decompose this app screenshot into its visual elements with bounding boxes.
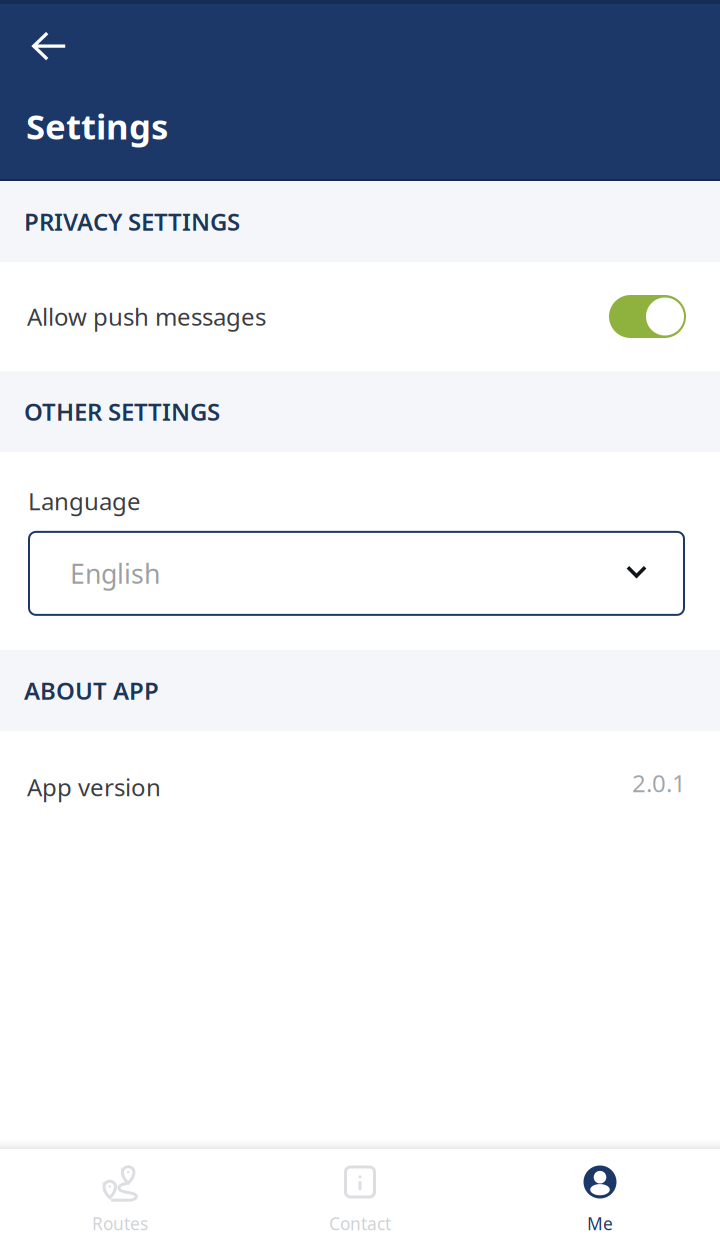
button[interactable]: Back bbox=[0, 0, 80, 67]
button[interactable]: Allow push messages bbox=[0, 262, 720, 371]
staticText: Routes bbox=[92, 1212, 148, 1235]
staticText: English bbox=[70, 556, 160, 591]
staticText: App version bbox=[27, 771, 161, 803]
staticText: PRIVACY SETTINGS bbox=[24, 206, 240, 237]
staticText: OTHER SETTINGS bbox=[24, 396, 220, 427]
staticText: Language bbox=[28, 485, 141, 517]
staticText: Me bbox=[587, 1212, 613, 1235]
staticText: Allow push messages bbox=[27, 301, 266, 332]
staticText: Settings bbox=[26, 103, 168, 149]
staticText: 2.0.1 bbox=[632, 767, 686, 799]
button[interactable]: Routes bbox=[0, 1148, 240, 1247]
staticText: Contact bbox=[329, 1212, 391, 1235]
button[interactable]: Contact bbox=[240, 1148, 480, 1247]
staticText: ABOUT APP bbox=[24, 675, 159, 706]
button[interactable]: English bbox=[0, 517, 684, 615]
button[interactable]: Me bbox=[480, 1148, 720, 1247]
